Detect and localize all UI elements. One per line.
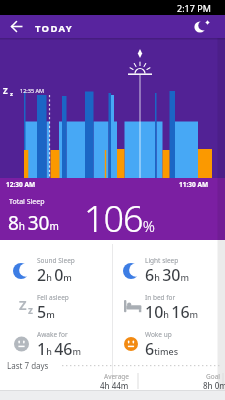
staticText: 2:17 PM: [177, 2, 211, 14]
button[interactable]: [113, 286, 225, 323]
button[interactable]: [0, 355, 225, 371]
staticText: 5m: [37, 301, 55, 323]
staticText: Light sleep: [145, 256, 179, 265]
staticText: Fell asleep: [37, 293, 69, 302]
staticText: Goal: [206, 372, 220, 381]
staticText: 11:30 AM: [179, 180, 209, 189]
button[interactable]: [4, 16, 32, 37]
staticText: 8h 30m: [8, 210, 59, 236]
staticText: 12:35 AM: [20, 87, 44, 94]
staticText: z: [28, 303, 33, 317]
staticText: 2h 0m: [37, 264, 72, 286]
button[interactable]: [0, 248, 112, 285]
staticText: z: [10, 90, 13, 98]
staticText: Awake for: [37, 330, 68, 339]
staticText: Z: [19, 296, 27, 314]
staticText: 6times: [145, 338, 179, 360]
staticText: Sound Sleep: [37, 256, 75, 265]
button[interactable]: [0, 323, 112, 360]
staticText: 1h 46m: [37, 338, 81, 360]
button[interactable]: [113, 248, 225, 285]
staticText: 10h 16m: [145, 301, 199, 323]
button[interactable]: [90, 371, 225, 390]
button[interactable]: [188, 15, 218, 38]
staticText: TODAY: [35, 22, 74, 35]
staticText: Last 7 days: [7, 360, 49, 371]
staticText: Woke up: [145, 330, 172, 339]
staticText: Total Sleep: [9, 197, 45, 207]
staticText: In bed for: [145, 293, 176, 302]
button[interactable]: [113, 323, 225, 360]
staticText: Z: [3, 85, 8, 96]
button[interactable]: [0, 286, 112, 323]
staticText: 4h 44m: [100, 380, 129, 391]
staticText: 106%: [84, 194, 155, 243]
staticText: 12:30 AM: [6, 180, 36, 189]
staticText: Average: [104, 372, 129, 381]
staticText: 8h 0m: [203, 380, 225, 391]
staticText: 6h 30m: [145, 264, 189, 286]
